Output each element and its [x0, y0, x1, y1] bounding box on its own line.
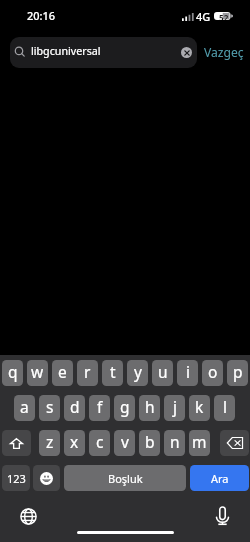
button[interactable]: b — [139, 430, 160, 456]
staticText: o — [208, 361, 218, 382]
staticText: Vazgeç — [204, 44, 244, 60]
staticText: l — [223, 396, 227, 417]
button[interactable]: w — [27, 360, 48, 386]
staticText: i — [186, 361, 190, 382]
staticText: j — [173, 396, 177, 417]
button[interactable]: k — [189, 395, 210, 421]
button[interactable]: Vazgeç — [204, 37, 244, 68]
staticText: 52 — [219, 12, 229, 20]
button[interactable]: u — [152, 360, 173, 386]
button[interactable]: j — [164, 395, 185, 421]
button[interactable]: f — [89, 395, 110, 421]
staticText: m — [192, 431, 207, 452]
staticText: f — [97, 396, 103, 417]
button[interactable]: i — [177, 360, 198, 386]
button[interactable]: m — [189, 430, 210, 456]
button[interactable]: e — [52, 360, 73, 386]
staticText: a — [20, 396, 29, 417]
staticText: Boşluk — [108, 471, 143, 486]
button[interactable]: Ara — [190, 465, 249, 491]
button[interactable]: p — [227, 360, 248, 386]
staticText: libgcuniversal — [31, 44, 101, 59]
button[interactable]: Change keyboard language — [14, 502, 42, 530]
staticText: c — [96, 431, 104, 452]
staticText: u — [158, 361, 168, 382]
button[interactable]: 123 — [2, 465, 30, 491]
button[interactable]: y — [127, 360, 148, 386]
button[interactable]: Clear text — [181, 47, 192, 58]
staticText: 4G — [196, 9, 211, 24]
staticText: e — [58, 361, 67, 382]
button[interactable]: g — [114, 395, 135, 421]
button[interactable]: z — [39, 430, 60, 456]
staticText: q — [8, 361, 18, 382]
staticText: r — [84, 361, 91, 382]
button[interactable]: Emoji keyboard — [33, 465, 60, 491]
button[interactable]: l — [214, 395, 235, 421]
button[interactable]: Shift — [2, 430, 31, 456]
button[interactable]: q — [2, 360, 23, 386]
button[interactable]: Backspace — [220, 430, 249, 456]
button[interactable]: a — [14, 395, 35, 421]
button[interactable]: x — [64, 430, 85, 456]
button[interactable]: n — [164, 430, 185, 456]
staticText: b — [145, 431, 155, 452]
staticText: g — [120, 396, 130, 417]
staticText: s — [46, 396, 54, 417]
button[interactable]: Boşluk — [64, 465, 186, 491]
staticText: v — [121, 431, 129, 452]
button[interactable]: libgcuniversal — [10, 37, 197, 68]
button[interactable]: s — [39, 395, 60, 421]
staticText: h — [145, 396, 155, 417]
button[interactable]: r — [77, 360, 98, 386]
button[interactable]: Dictation — [209, 502, 236, 529]
button[interactable]: c — [89, 430, 110, 456]
staticText: 123 — [7, 471, 26, 486]
staticText: Ara — [211, 471, 229, 486]
button[interactable]: t — [102, 360, 123, 386]
staticText: z — [46, 431, 54, 452]
staticText: p — [233, 361, 243, 382]
button[interactable]: h — [139, 395, 160, 421]
staticText: k — [195, 396, 204, 417]
button[interactable]: v — [114, 430, 135, 456]
staticText: y — [134, 361, 142, 382]
staticText: d — [70, 396, 80, 417]
staticText: t — [110, 361, 116, 382]
button[interactable]: d — [64, 395, 85, 421]
staticText: x — [70, 431, 79, 452]
staticText: n — [170, 431, 180, 452]
staticText: w — [31, 361, 44, 382]
button[interactable]: o — [202, 360, 223, 386]
staticText: 20:16 — [27, 8, 56, 23]
